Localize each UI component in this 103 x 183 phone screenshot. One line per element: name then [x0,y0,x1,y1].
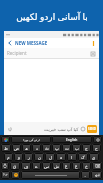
button[interactable]: ب [72,144,81,152]
button[interactable]: ر [24,153,33,161]
staticText: ۔ [84,173,87,178]
button[interactable]: ق [10,162,20,170]
staticText: خ [85,164,88,169]
button[interactable]: Enter [91,171,102,179]
button[interactable]: Theme [1,136,10,143]
staticText: ب [75,146,79,151]
button[interactable]: پ [52,144,61,152]
button[interactable]: ص [12,144,21,152]
button[interactable]: Send [87,125,97,133]
button[interactable]: ا [67,153,77,161]
button[interactable]: ح [92,144,101,152]
staticText: Recipient [7,50,27,56]
button[interactable]: ل [45,153,55,161]
staticText: ر [28,155,30,160]
staticText: SEND [88,127,96,131]
staticText: اردو کی بورڈ [23,138,40,142]
staticText: پ [55,146,59,151]
button[interactable]: Period [81,171,90,179]
button[interactable]: و [14,153,23,161]
staticText: با آسانی اردو لکھیں [16,10,88,22]
staticText: و [18,155,20,160]
button[interactable]: Recipient [4,48,99,58]
staticText: ن [38,155,41,160]
staticText: ق [13,164,17,169]
button[interactable]: ن [34,153,44,161]
button[interactable]: ہ [56,153,66,161]
staticText: ک [81,155,85,160]
button[interactable]: ج [82,144,91,152]
button[interactable]: ٹ [42,144,51,152]
button[interactable]: د [32,144,41,152]
button[interactable]: ے [32,162,41,170]
button[interactable]: ت [62,144,71,152]
button[interactable]: ع [72,162,81,170]
staticText: ل [49,155,52,160]
button[interactable]: Symbols [1,171,10,179]
button[interactable]: Attach [6,125,14,133]
staticText: ت [65,146,69,151]
staticText: م [7,155,10,160]
staticText: س [44,164,49,169]
button[interactable]: م [4,153,13,161]
button[interactable]: English [52,136,92,143]
button[interactable]: س [42,162,51,170]
staticText: ھ [25,146,28,151]
button[interactable]: More options [89,39,97,47]
staticText: کیا آپ سب خیریت [44,126,79,132]
button[interactable]: Back [6,39,14,47]
button[interactable]: ش [52,162,61,170]
staticText: ح [95,146,98,151]
button[interactable]: Backspace [92,162,102,170]
staticText: English [66,138,78,142]
button[interactable]: ط [1,144,11,152]
other: Contacts [89,50,96,57]
staticText: ہ [60,155,63,160]
staticText: ی [92,155,96,160]
staticText: ع [75,164,78,169]
staticText: ص [14,146,19,151]
staticText: د [36,146,38,151]
staticText: ?١٢ [3,173,8,177]
staticText: ج [85,146,88,151]
button[interactable]: غ [62,162,71,170]
button[interactable]: Shift [1,162,9,170]
staticText: ط [4,146,8,151]
staticText: غ [65,164,68,169]
button[interactable]: اردو کی بورڈ [11,136,51,143]
button[interactable]: Settings [93,136,102,143]
button[interactable]: Space [21,171,80,179]
staticText: ف [24,164,29,169]
button[interactable]: Emoji [11,171,20,179]
staticText: ٹ [45,146,49,151]
button[interactable]: خ [82,162,91,170]
button[interactable]: ف [21,162,31,170]
staticText: ے [35,164,38,169]
button[interactable]: ی [89,153,99,161]
button[interactable]: NEW MESSAGE [15,40,48,46]
staticText: ش [54,164,59,169]
button[interactable]: ھ [22,144,31,152]
staticText: ا [71,155,73,160]
button[interactable]: ک [78,153,88,161]
